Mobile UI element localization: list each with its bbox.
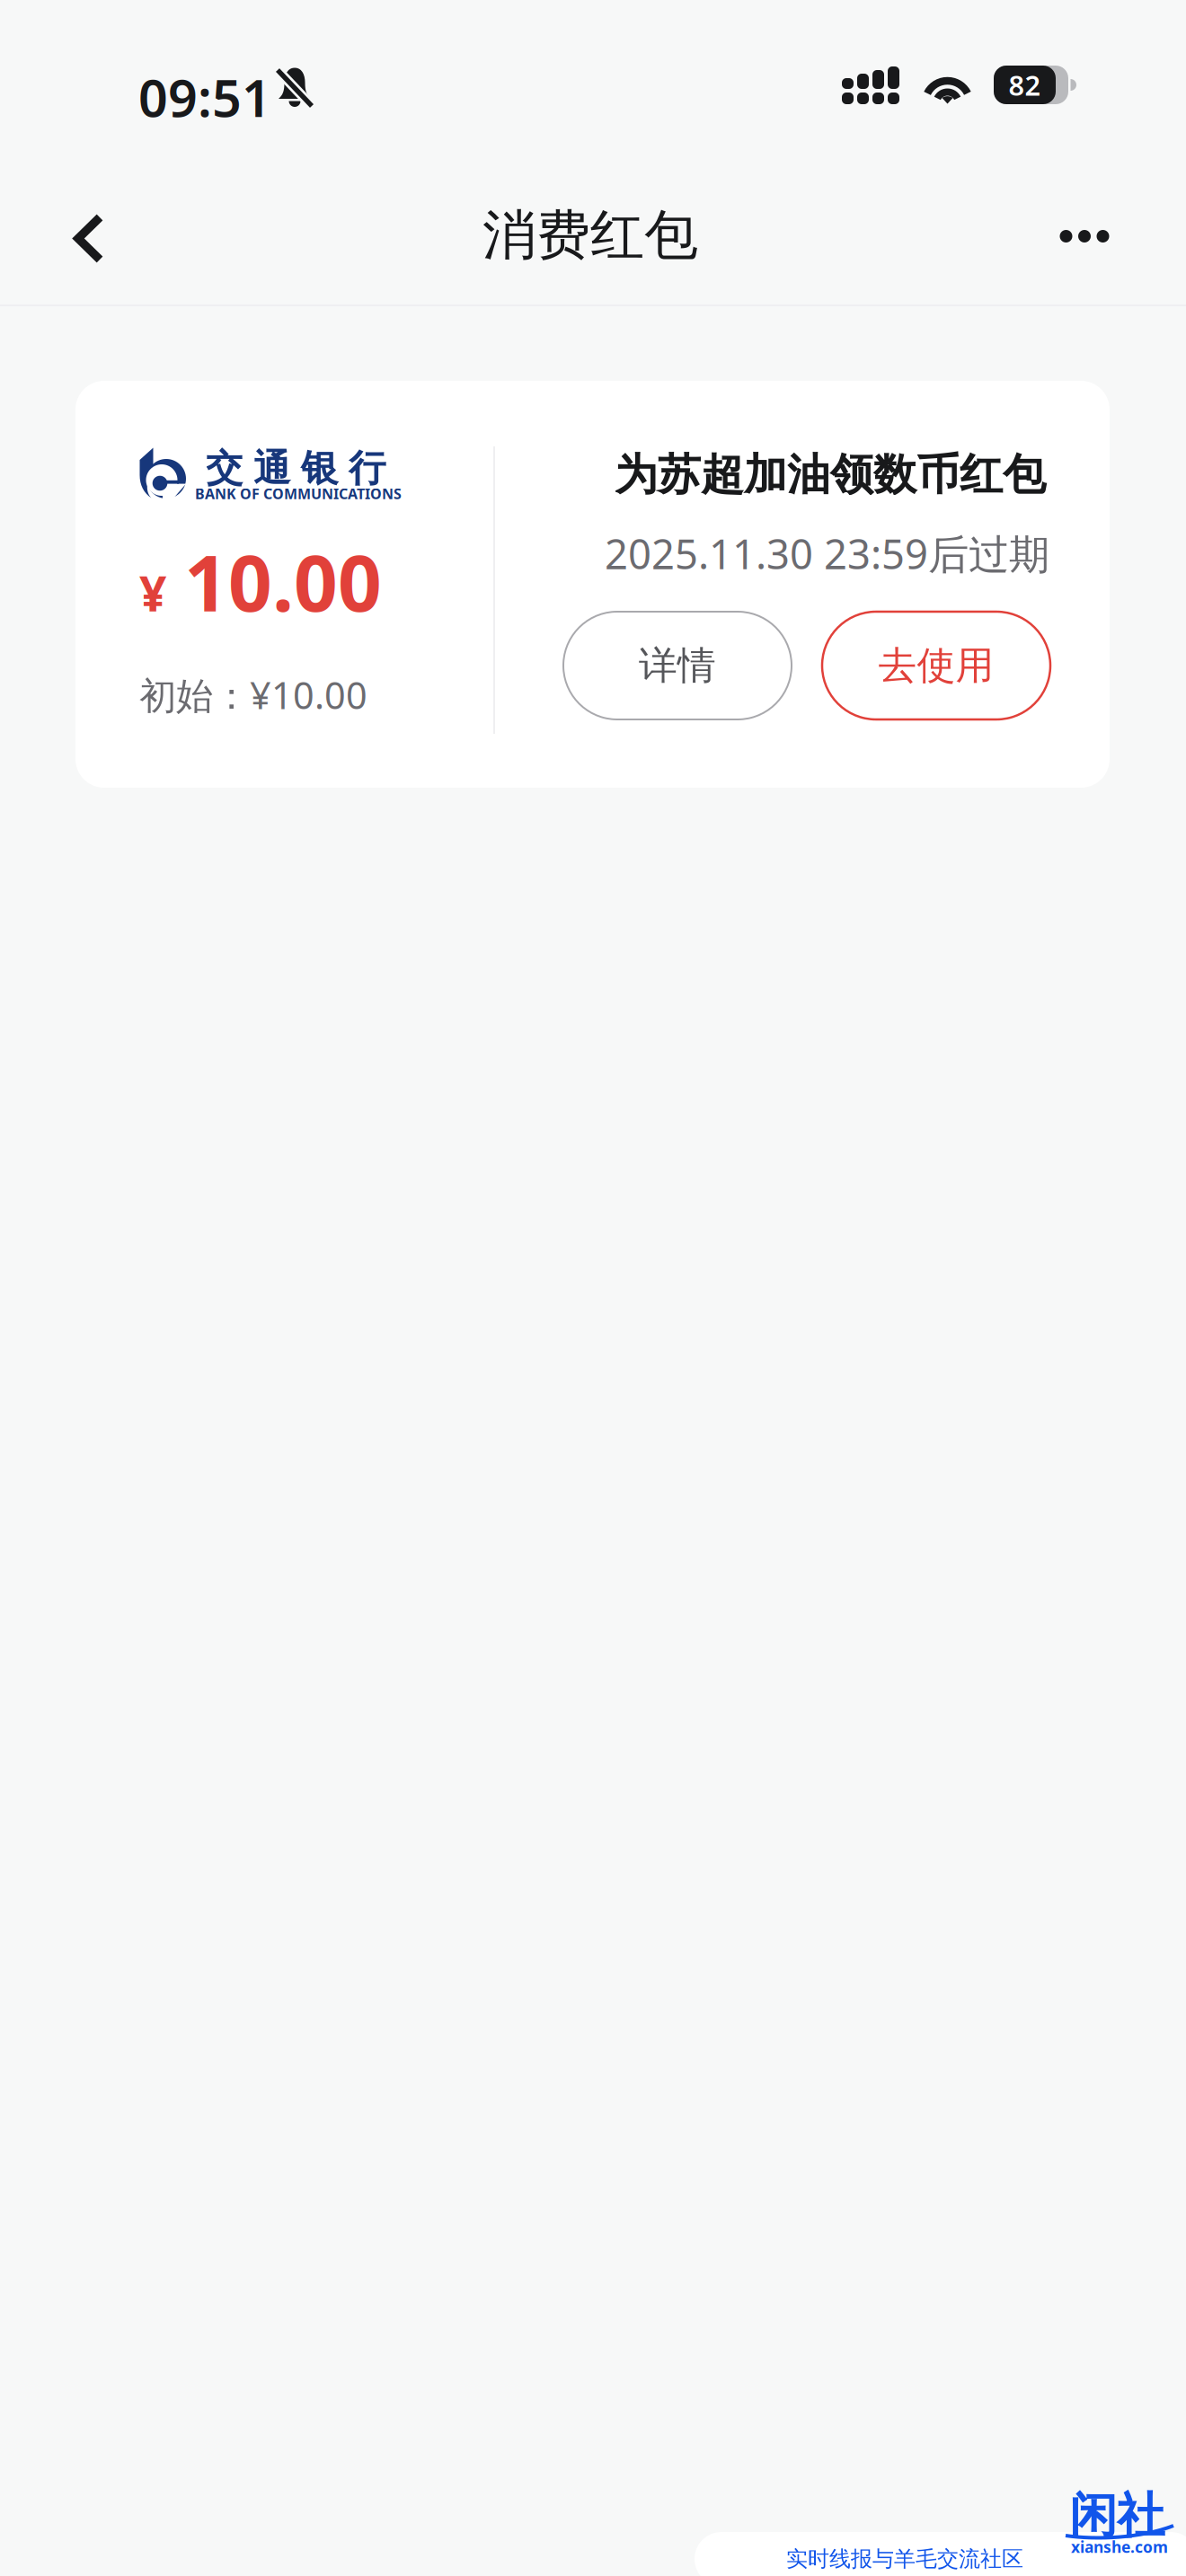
staticText: 09:51: [138, 63, 271, 131]
staticText: BANK OF COMMUNICATIONS: [195, 484, 402, 503]
staticText: 82: [1009, 67, 1041, 103]
button[interactable]: More: [1027, 176, 1142, 296]
button[interactable]: 详情: [563, 612, 792, 719]
staticText: 初始：¥10.00: [139, 670, 367, 719]
staticText: ¥: [139, 561, 167, 625]
staticText: 消费红包: [482, 202, 698, 268]
staticText: 交 通 银 行: [206, 446, 385, 491]
staticText: 闲社: [1069, 2486, 1164, 2545]
staticText: xianshe.com: [1071, 2536, 1168, 2557]
button[interactable]: 去使用: [822, 612, 1050, 719]
staticText: 为苏超加油领数币红包: [615, 448, 1046, 501]
staticText: 详情: [639, 642, 716, 689]
staticText: 实时线报与羊毛交流社区: [786, 2546, 1023, 2572]
staticText: 2025.11.30 23:59后过期: [605, 526, 1049, 580]
button[interactable]: Back: [40, 181, 138, 296]
staticText: 去使用: [878, 642, 994, 689]
staticText: 10.00: [184, 531, 382, 633]
